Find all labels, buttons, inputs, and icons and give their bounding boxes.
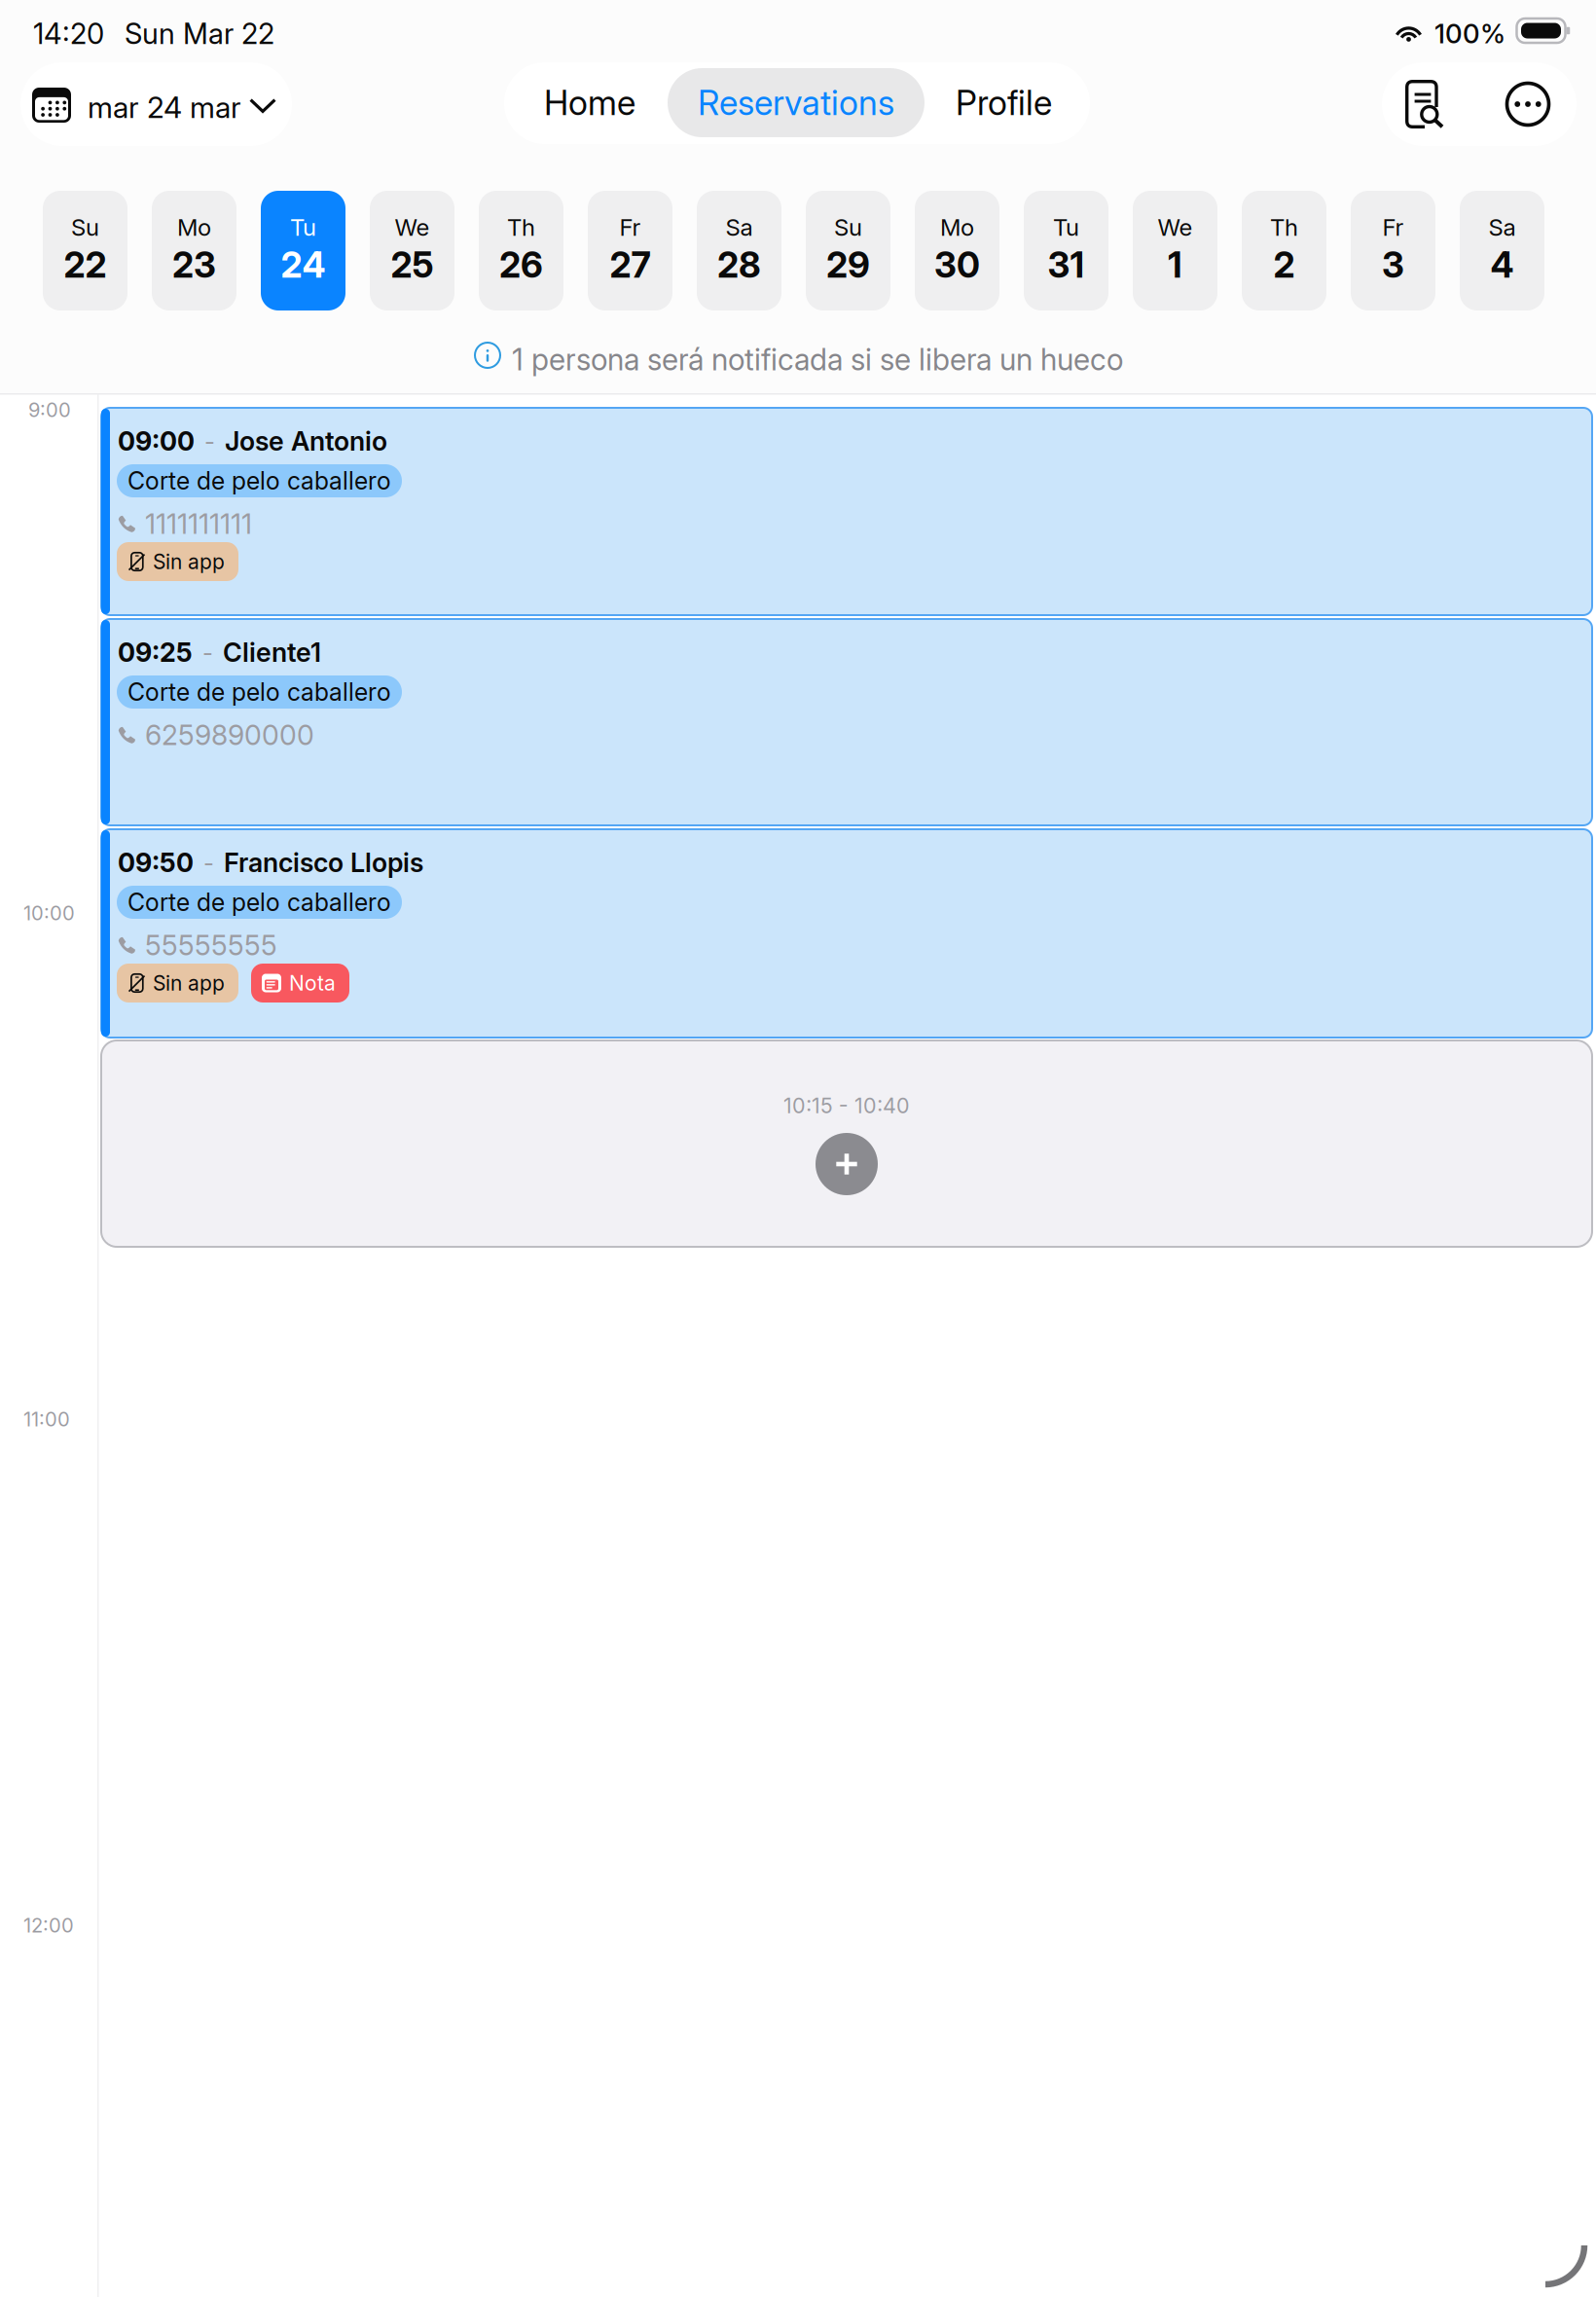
staticText: We bbox=[1158, 213, 1193, 241]
button[interactable]: 10:15 - 10:40 bbox=[101, 1040, 1592, 1247]
staticText: 30 bbox=[934, 243, 980, 286]
staticText: 09:50 bbox=[118, 847, 194, 879]
staticText: 11:00 bbox=[23, 1407, 70, 1431]
button[interactable]: 09:00 bbox=[101, 408, 1592, 615]
button[interactable]: 09:25 bbox=[101, 619, 1592, 825]
staticText: 1111111111 bbox=[145, 507, 252, 541]
staticText: 1 persona será notificada si se libera u… bbox=[512, 342, 1123, 377]
staticText: Sun Mar 22 bbox=[125, 17, 274, 51]
staticText: 26 bbox=[499, 243, 543, 286]
button[interactable]: Tu bbox=[261, 191, 345, 310]
button[interactable]: Fr bbox=[1351, 191, 1435, 310]
staticText: Sa bbox=[725, 213, 753, 241]
staticText: 10:00 bbox=[23, 901, 75, 925]
staticText: 4 bbox=[1490, 243, 1514, 286]
staticText: Sin app bbox=[153, 971, 225, 995]
staticText: 12:00 bbox=[23, 1914, 74, 1937]
staticText: 6259890000 bbox=[145, 718, 314, 752]
staticText: Profile bbox=[956, 82, 1052, 123]
button[interactable]: 09:50 bbox=[101, 829, 1592, 1038]
staticText: Nota bbox=[289, 971, 336, 995]
button[interactable]: We bbox=[1133, 191, 1217, 310]
staticText: 24 bbox=[281, 243, 326, 286]
staticText: Jose Antonio bbox=[225, 425, 387, 457]
staticText: Th bbox=[507, 213, 535, 241]
staticText: 9:00 bbox=[28, 398, 71, 422]
staticText: Fr bbox=[1382, 213, 1404, 241]
staticText: 55555555 bbox=[145, 929, 277, 962]
staticText: Su bbox=[71, 213, 99, 241]
staticText: Francisco Llopis bbox=[224, 847, 423, 879]
button[interactable]: More options bbox=[1498, 62, 1558, 146]
staticText: 25 bbox=[391, 243, 434, 286]
staticText: 27 bbox=[610, 243, 651, 286]
staticText: Sin app bbox=[153, 549, 225, 574]
button[interactable]: Sa bbox=[697, 191, 781, 310]
button[interactable]: Sa bbox=[1460, 191, 1544, 310]
staticText: Sa bbox=[1488, 213, 1516, 241]
staticText: 100% bbox=[1434, 18, 1505, 50]
button[interactable]: Su bbox=[806, 191, 890, 310]
button[interactable]: Th bbox=[479, 191, 563, 310]
button[interactable]: We bbox=[370, 191, 454, 310]
button[interactable]: Fr bbox=[588, 191, 672, 310]
staticText: Cliente1 bbox=[223, 637, 321, 668]
staticText: 31 bbox=[1048, 243, 1085, 286]
staticText: Corte de pelo caballero bbox=[127, 677, 391, 707]
button[interactable]: Home bbox=[504, 62, 1090, 144]
staticText: Su bbox=[834, 213, 862, 241]
staticText: Reservations bbox=[698, 82, 894, 123]
button[interactable]: Th bbox=[1242, 191, 1326, 310]
staticText: Fr bbox=[619, 213, 641, 241]
button[interactable]: Mo bbox=[152, 191, 236, 310]
staticText: 14:20 bbox=[33, 17, 104, 51]
staticText: We bbox=[395, 213, 430, 241]
staticText: 28 bbox=[717, 243, 761, 286]
staticText: 22 bbox=[64, 243, 107, 286]
staticText: 09:00 bbox=[118, 425, 195, 457]
button[interactable]: Profile bbox=[925, 68, 1083, 137]
staticText: 23 bbox=[172, 243, 216, 286]
staticText: mar 24 mar bbox=[88, 90, 241, 125]
button[interactable]: Tu bbox=[1024, 191, 1108, 310]
staticText: Corte de pelo caballero bbox=[127, 466, 391, 495]
button[interactable]: Search records bbox=[1395, 62, 1455, 146]
staticText: Corte de pelo caballero bbox=[127, 888, 391, 917]
button[interactable]: Reservations bbox=[668, 68, 925, 137]
staticText: Mo bbox=[940, 213, 974, 241]
staticText: Th bbox=[1270, 213, 1298, 241]
staticText: Home bbox=[544, 82, 635, 123]
staticText: - bbox=[202, 638, 213, 667]
staticText: 09:25 bbox=[118, 637, 193, 668]
staticText: 2 bbox=[1273, 243, 1295, 286]
button[interactable]: Su bbox=[43, 191, 127, 310]
staticText: 1 bbox=[1168, 243, 1182, 286]
staticText: 10:15 - 10:40 bbox=[783, 1093, 910, 1118]
button[interactable]: Home bbox=[512, 68, 668, 137]
staticText: 3 bbox=[1382, 243, 1404, 286]
button[interactable]: Mo bbox=[915, 191, 999, 310]
staticText: 29 bbox=[826, 243, 870, 286]
button[interactable]: mar 24 mar bbox=[20, 62, 292, 146]
staticText: Mo bbox=[177, 213, 211, 241]
staticText: Tu bbox=[290, 213, 316, 241]
staticText: - bbox=[203, 849, 214, 877]
staticText: Tu bbox=[1053, 213, 1079, 241]
staticText: - bbox=[204, 427, 215, 455]
